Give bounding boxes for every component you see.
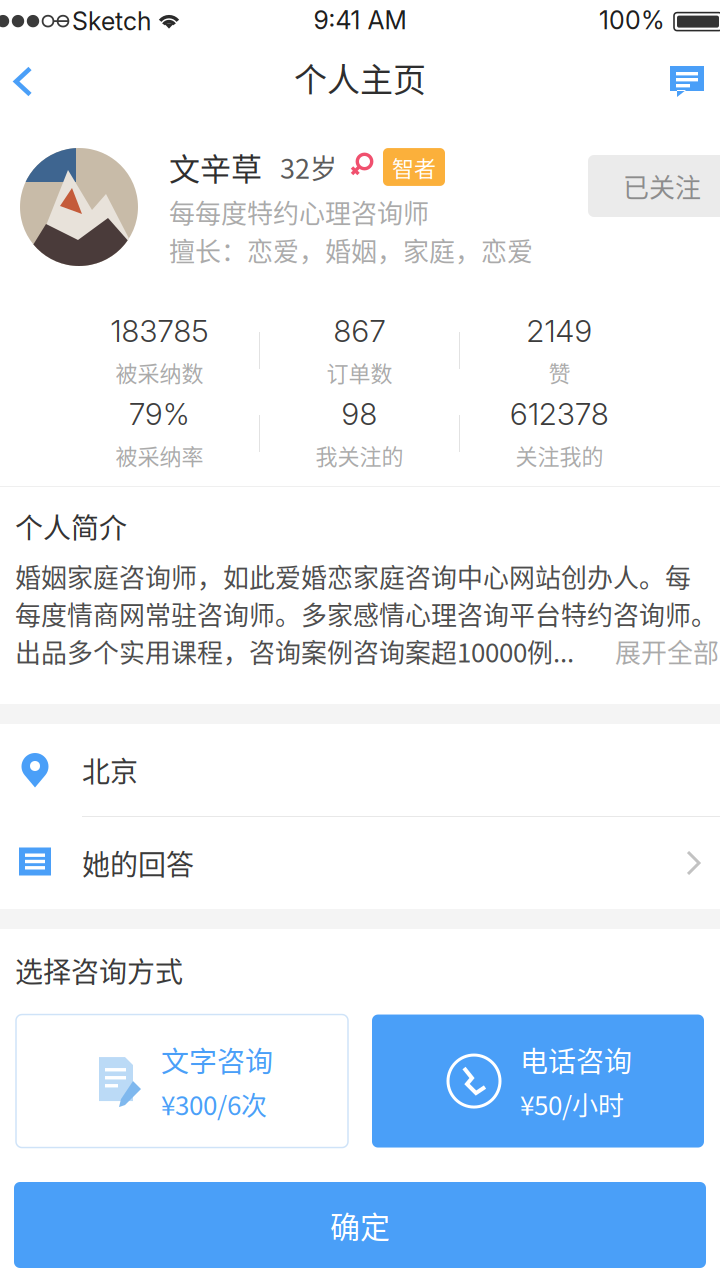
staticText: 电话咨询	[520, 1039, 632, 1080]
staticText: 婚姻家庭咨询师，如此爱婚恋家庭咨询中心网站创办人。每	[15, 557, 691, 595]
staticText: ¥300/6次	[161, 1085, 267, 1123]
staticText: 出品多个实用课程，咨询案例咨询案超10000例...	[15, 632, 574, 670]
staticText: 被采纳数	[115, 356, 203, 388]
staticText: 个人主页	[294, 54, 426, 101]
staticText: 每度情商网常驻咨询师。多家感情心理咨询平台特约咨询师。	[15, 595, 717, 632]
staticText: 我关注的	[315, 439, 403, 471]
button[interactable]: Back	[8, 52, 62, 112]
staticText: 612378	[510, 396, 609, 432]
staticText: 北京	[82, 750, 138, 790]
button[interactable]: 她的回答	[0, 817, 720, 909]
staticText: 每每度特约心理咨询师	[169, 193, 429, 231]
staticText: 867	[333, 313, 385, 349]
button[interactable]: 展开全部	[609, 632, 719, 670]
staticText: 关注我的	[515, 439, 603, 471]
staticText: 100%	[599, 5, 665, 35]
button[interactable]: 确定	[14, 1182, 706, 1268]
staticText: Sketch	[72, 6, 151, 36]
staticText: 她的回答	[82, 843, 194, 883]
staticText: 98	[341, 396, 377, 432]
button[interactable]: 已关注	[588, 155, 720, 217]
staticText: 2149	[526, 313, 592, 349]
staticText: 智者	[392, 151, 436, 183]
staticText: 已关注	[623, 167, 701, 205]
staticText: 订单数	[326, 356, 392, 388]
staticText: ¥50/小时	[520, 1085, 624, 1123]
staticText: 79%	[129, 396, 190, 432]
staticText: 赞	[548, 356, 570, 388]
staticText: 展开全部	[615, 632, 719, 670]
staticText: 文字咨询	[161, 1039, 273, 1080]
staticText: 183785	[110, 313, 208, 349]
button[interactable]: Messages	[660, 52, 714, 112]
button[interactable]: 文字咨询	[16, 1014, 348, 1147]
staticText: 9:41 AM	[313, 5, 406, 35]
staticText: 文辛草	[169, 145, 262, 189]
button[interactable]: 北京	[0, 724, 720, 816]
staticText: 32岁	[280, 147, 337, 187]
staticText: 被采纳率	[115, 439, 203, 471]
staticText: 个人简介	[15, 506, 127, 546]
staticText: 擅长：恋爱，婚姻，家庭，恋爱	[169, 231, 533, 269]
button[interactable]: 电话咨询	[372, 1014, 704, 1147]
staticText: 选择咨询方式	[15, 950, 183, 990]
staticText: 确定	[330, 1203, 390, 1247]
